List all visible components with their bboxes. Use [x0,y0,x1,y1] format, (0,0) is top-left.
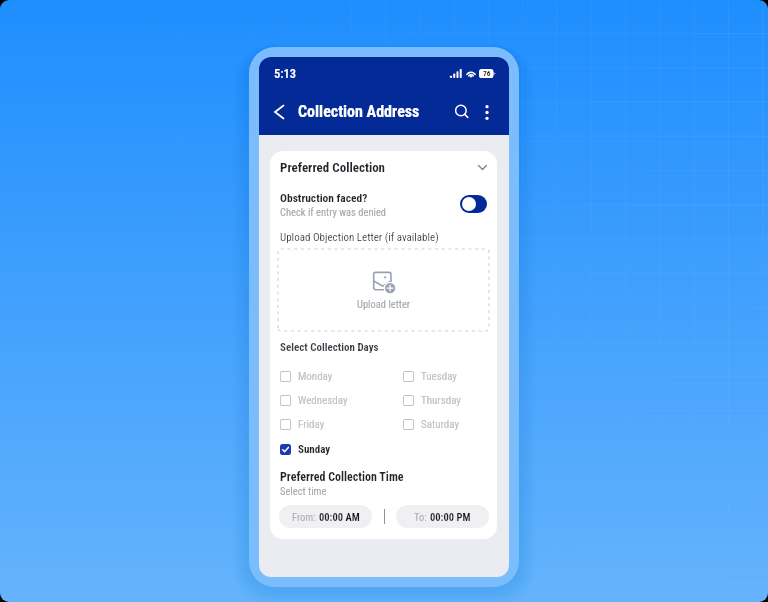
button[interactable]: From: [279,505,372,528]
staticText: 5:13 [274,66,296,81]
button[interactable]: Monday [280,368,403,385]
staticText: 00:00 AM [319,511,360,523]
button[interactable]: Tuesday [403,368,493,385]
staticText: Saturday [421,418,460,431]
staticText: Check if entry was denied [280,206,387,218]
staticText: Upload Objection Letter (if available) [280,231,439,244]
staticText: 00:00 PM [430,511,471,523]
staticText: From: [292,511,319,523]
staticText: To: [414,511,430,523]
button[interactable]: To: [396,505,489,528]
button[interactable]: Upload letter [278,249,489,331]
staticText: Preferred Collection [280,160,386,175]
staticText: Obstruction faced? [280,191,368,204]
staticText: Friday [298,418,325,431]
button[interactable]: Obstruction faced toggle [460,195,487,213]
staticText: 76 [483,69,491,78]
staticText: Upload letter [357,298,411,310]
staticText: Collection Address [298,102,420,121]
staticText: Preferred Collection Time [280,470,404,484]
button[interactable]: Friday [280,416,403,433]
button[interactable]: Preferred Collection [270,156,497,179]
button[interactable]: Back [270,103,288,121]
staticText: Sunday [298,443,331,456]
button[interactable]: Obstruction faced? [270,188,497,220]
staticText: Wednesday [298,394,348,407]
staticText: Select Collection Days [280,341,379,354]
button[interactable]: Sunday [280,441,403,458]
staticText: Thursday [421,394,461,407]
button[interactable]: Thursday [403,392,493,409]
button[interactable]: Wednesday [280,392,403,409]
staticText: Tuesday [421,370,457,383]
button[interactable]: Saturday [403,416,493,433]
staticText: Monday [298,370,333,383]
button[interactable]: More options [477,102,497,122]
button[interactable]: Search [452,102,472,122]
staticText: Select time [280,485,327,497]
